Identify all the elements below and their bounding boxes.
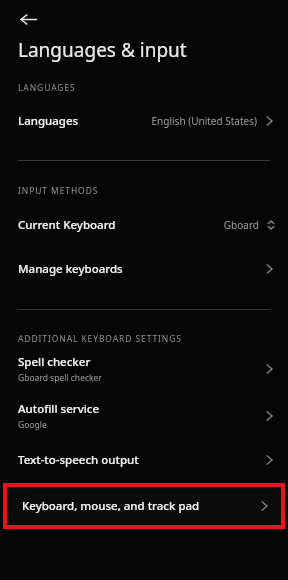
- button[interactable]: Autofill service: [0, 399, 288, 433]
- button[interactable]: Keyboard, mouse, and track pad: [7, 487, 281, 525]
- button[interactable]: Languages: [0, 106, 288, 136]
- button[interactable]: Manage keyboards: [0, 254, 288, 284]
- staticText: Gboard spell checker: [18, 372, 102, 384]
- staticText: LANGUAGES: [18, 82, 76, 94]
- button[interactable]: Current Keyboard: [0, 210, 288, 240]
- staticText: Autofill service: [18, 401, 100, 417]
- staticText: INPUT METHODS: [18, 185, 99, 197]
- staticText: English (United States): [151, 114, 257, 128]
- staticText: Languages & input: [18, 37, 187, 63]
- button[interactable]: Back: [14, 5, 42, 33]
- staticText: Current Keyboard: [18, 217, 116, 233]
- staticText: Languages: [18, 113, 79, 129]
- staticText: Spell checker: [18, 354, 91, 370]
- staticText: Manage keyboards: [18, 261, 123, 277]
- button[interactable]: Text-to-speech output: [0, 445, 288, 475]
- staticText: Google: [18, 419, 47, 431]
- staticText: Gboard: [223, 218, 259, 232]
- button[interactable]: Spell checker: [0, 352, 288, 386]
- staticText: Text-to-speech output: [18, 452, 139, 468]
- staticText: ADDITIONAL KEYBOARD SETTINGS: [18, 333, 182, 345]
- staticText: Keyboard, mouse, and track pad: [22, 498, 257, 514]
